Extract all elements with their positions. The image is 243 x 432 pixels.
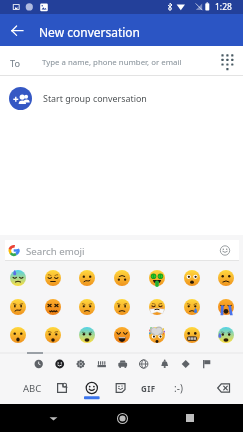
staticText: Type a name, phone number, or email [42, 57, 182, 68]
button[interactable]: Emoji [69, 321, 104, 349]
button[interactable]: Emoji [35, 293, 70, 321]
button[interactable]: Emoji [208, 321, 243, 349]
button[interactable]: Emoji [174, 264, 209, 292]
button[interactable]: Emoji [0, 321, 35, 349]
button[interactable]: GIF [133, 374, 163, 402]
button[interactable]: Backspace [209, 374, 239, 402]
staticText: GIF [141, 383, 156, 394]
button[interactable]: Emoji [78, 374, 106, 402]
button[interactable]: Emoji [208, 264, 243, 292]
button[interactable]: Emoji category [49, 351, 70, 372]
button[interactable]: Emoticons [163, 374, 193, 402]
staticText: Search emoji [26, 245, 85, 258]
button[interactable]: Emoji category [175, 351, 196, 372]
button[interactable]: Emoji [174, 321, 209, 349]
button[interactable]: Emoji [139, 264, 174, 292]
button[interactable]: Home [107, 404, 137, 432]
button[interactable]: Recent apps [175, 404, 205, 432]
staticText: Start group conversation [43, 92, 147, 104]
button[interactable]: Emoji category [112, 351, 133, 372]
button[interactable]: Emoji [0, 293, 35, 321]
button[interactable]: Emoji [139, 321, 174, 349]
staticText: New conversation [39, 24, 141, 40]
button[interactable]: Emoji [69, 264, 104, 292]
button[interactable]: Emoji [69, 293, 104, 321]
button[interactable]: Emoji category [91, 351, 112, 372]
button[interactable]: Back [38, 404, 68, 432]
button[interactable]: Emoji [104, 264, 139, 292]
button[interactable]: Emoji [104, 321, 139, 349]
button[interactable]: Emoji [208, 293, 243, 321]
button[interactable]: Emoji [104, 293, 139, 321]
button[interactable]: Dialpad [211, 46, 241, 76]
button[interactable]: Emoji category [196, 351, 217, 372]
button[interactable]: Emoji category [28, 351, 49, 372]
staticText: :-) [174, 381, 183, 395]
staticText: 1:28 [215, 1, 232, 13]
button[interactable]: Emoji [35, 321, 70, 349]
button[interactable]: Emoji category [154, 351, 175, 372]
button[interactable]: Keyboard [4, 374, 60, 402]
button[interactable]: Start group conversation [0, 76, 243, 113]
staticText: ABC [23, 382, 42, 395]
button[interactable]: Emoji [174, 293, 209, 321]
staticText: To [10, 57, 21, 70]
button[interactable]: Emoji [0, 264, 35, 292]
button[interactable]: Stickers [107, 374, 135, 402]
button[interactable]: Navigate up [1, 14, 33, 46]
button[interactable]: Image search [48, 374, 76, 402]
button[interactable]: Search emoji [5, 240, 239, 261]
button[interactable]: Emoji [35, 264, 70, 292]
button[interactable]: Emoji category [70, 351, 91, 372]
button[interactable]: Emoji category [133, 351, 154, 372]
button[interactable]: Emoji [139, 293, 174, 321]
